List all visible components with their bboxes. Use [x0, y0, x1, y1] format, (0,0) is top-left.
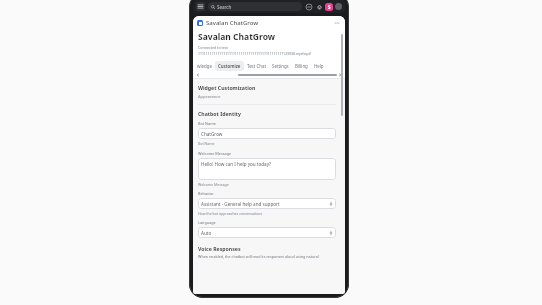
button[interactable]: Hello! How can I help you today?: [198, 158, 336, 180]
button[interactable]: More options: [333, 19, 341, 27]
staticText: Connected to test: [198, 45, 228, 50]
staticText: Savalan ChatGrow: [206, 19, 259, 27]
button[interactable]: Account: [335, 3, 342, 10]
button[interactable]: Apps: [305, 3, 313, 11]
staticText: Language: [198, 220, 216, 225]
button[interactable]: ChatGrow: [198, 128, 336, 139]
button[interactable]: Notifications: [315, 3, 323, 11]
button[interactable]: Help: [311, 61, 327, 71]
button[interactable]: Assistant - General help and support: [198, 198, 336, 209]
staticText: ChatGrow: [201, 131, 223, 136]
staticText: Welcome Message: [198, 182, 229, 187]
button[interactable]: wledge: [194, 61, 215, 71]
staticText: Bot Name: [198, 121, 216, 126]
staticText: Auto: [201, 230, 329, 236]
staticText: How the bot approaches conversations: [198, 211, 263, 216]
button[interactable]: Customize: [215, 61, 244, 71]
staticText: Widget Customization: [198, 84, 256, 91]
staticText: Hello! How can I help you today?: [201, 161, 272, 167]
staticText: wledge: [197, 63, 212, 69]
staticText: S: [328, 4, 331, 10]
button[interactable]: Test Chat: [244, 61, 269, 71]
button[interactable]: Menu: [196, 2, 205, 11]
staticText: Welcome Message: [198, 151, 232, 156]
staticText: Help: [314, 63, 324, 69]
staticText: Test Chat: [247, 63, 266, 69]
staticText: Appearance: [198, 94, 221, 99]
staticText: Voice Responses: [198, 245, 241, 252]
button[interactable]: Search: [208, 2, 302, 11]
staticText: Savalan ChatGrow: [198, 31, 276, 43]
staticText: 1111111111111111111111111111111111111111…: [198, 51, 311, 56]
button[interactable]: Settings: [269, 61, 292, 71]
staticText: Assistant - General help and support: [201, 201, 329, 207]
staticText: Billing: [295, 63, 308, 69]
staticText: Customize: [218, 63, 241, 69]
staticText: When enabled, the chatbot will read its …: [198, 254, 319, 259]
staticText: Chatbot Identity: [198, 110, 241, 117]
staticText: Search: [217, 4, 232, 10]
button[interactable]: Profile: [325, 3, 333, 11]
staticText: Behavior: [198, 191, 214, 196]
staticText: Settings: [272, 63, 289, 69]
button[interactable]: Auto: [198, 227, 336, 238]
staticText: Bot Name: [198, 141, 215, 146]
button[interactable]: Billing: [292, 61, 311, 71]
